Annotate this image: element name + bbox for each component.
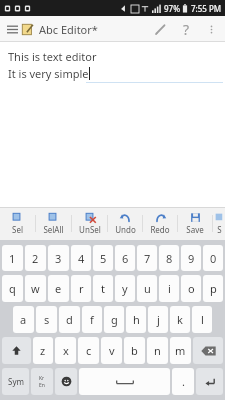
button[interactable]: Undo bbox=[108, 207, 142, 240]
staticText: Sel bbox=[12, 224, 23, 235]
button[interactable]: 2 bbox=[25, 245, 46, 271]
staticText: ? bbox=[183, 20, 190, 39]
staticText: q bbox=[9, 281, 16, 296]
button[interactable]: Menu bbox=[4, 21, 20, 37]
button[interactable]: o bbox=[181, 275, 201, 302]
staticText: 3 bbox=[55, 251, 62, 266]
staticText: It is very simple bbox=[8, 66, 89, 81]
staticText: n bbox=[154, 343, 161, 358]
staticText: p bbox=[210, 281, 217, 296]
staticText: s bbox=[44, 312, 50, 327]
button[interactable]: Backspace bbox=[193, 337, 223, 364]
button[interactable]: p bbox=[203, 275, 223, 302]
button[interactable]: w bbox=[25, 275, 46, 302]
staticText: t bbox=[101, 281, 105, 296]
button[interactable]: 9 bbox=[181, 245, 201, 271]
button[interactable]: Edit bbox=[147, 16, 173, 42]
staticText: 7 bbox=[144, 251, 151, 266]
button[interactable]: n bbox=[147, 337, 168, 364]
staticText: x bbox=[63, 343, 69, 358]
staticText: . bbox=[182, 374, 185, 389]
button[interactable]: s bbox=[36, 306, 57, 333]
staticText: u bbox=[144, 281, 151, 296]
button[interactable]: 7 bbox=[137, 245, 157, 271]
button[interactable]: 0 bbox=[203, 245, 223, 271]
staticText: f bbox=[90, 312, 94, 327]
button[interactable]: d bbox=[59, 306, 80, 333]
button[interactable]: More options bbox=[199, 17, 223, 41]
button[interactable]: m bbox=[170, 337, 191, 364]
button[interactable]: k bbox=[170, 306, 190, 333]
button[interactable]: 4 bbox=[71, 245, 91, 271]
staticText: 6 bbox=[122, 251, 129, 266]
staticText: En bbox=[39, 382, 45, 389]
staticText: 4 bbox=[78, 251, 85, 266]
button[interactable]: Redo bbox=[143, 207, 177, 240]
staticText: 2 bbox=[32, 251, 39, 266]
button[interactable]: Sym bbox=[2, 368, 29, 395]
button[interactable]: . bbox=[172, 368, 194, 395]
staticText: Redo bbox=[150, 224, 170, 235]
button[interactable]: h bbox=[126, 306, 146, 333]
staticText: w bbox=[31, 281, 40, 296]
button[interactable]: y bbox=[115, 275, 135, 302]
button[interactable]: g bbox=[104, 306, 124, 333]
staticText: h bbox=[133, 312, 140, 327]
button[interactable]: e bbox=[48, 275, 69, 302]
staticText: g bbox=[111, 312, 118, 327]
staticText: UnSel bbox=[79, 224, 101, 235]
button[interactable]: c bbox=[78, 337, 99, 364]
staticText: 1 bbox=[9, 251, 16, 266]
button[interactable]: 3 bbox=[48, 245, 69, 271]
staticText: y bbox=[122, 281, 128, 296]
staticText: a bbox=[20, 312, 27, 327]
button[interactable]: Enter bbox=[196, 368, 223, 395]
button[interactable]: t bbox=[93, 275, 113, 302]
staticText: o bbox=[188, 281, 195, 296]
button[interactable]: x bbox=[55, 337, 76, 364]
button[interactable]: Shift bbox=[2, 337, 31, 364]
button[interactable]: Help bbox=[173, 16, 199, 42]
button[interactable]: 8 bbox=[159, 245, 179, 271]
button[interactable]: v bbox=[101, 337, 122, 364]
staticText: m bbox=[175, 343, 186, 358]
staticText: e bbox=[55, 281, 62, 296]
staticText: v bbox=[109, 343, 115, 358]
staticText: Undo bbox=[115, 224, 136, 235]
staticText: c bbox=[86, 343, 92, 358]
button[interactable]: S bbox=[213, 207, 225, 240]
button[interactable]: b bbox=[124, 337, 145, 364]
button[interactable]: 6 bbox=[115, 245, 135, 271]
button[interactable]: Language bbox=[31, 368, 53, 395]
button[interactable]: 1 bbox=[2, 245, 23, 271]
button[interactable]: i bbox=[159, 275, 179, 302]
staticText: SelAll bbox=[43, 224, 64, 235]
staticText: Kr bbox=[39, 375, 45, 382]
staticText: z bbox=[40, 343, 46, 358]
button[interactable]: Sel bbox=[0, 207, 35, 240]
staticText: b bbox=[131, 343, 138, 358]
button[interactable]: SelAll bbox=[36, 207, 71, 240]
button[interactable]: j bbox=[148, 306, 168, 333]
staticText: 0 bbox=[210, 251, 217, 266]
button[interactable]: l bbox=[192, 306, 212, 333]
button[interactable]: This is text editor bbox=[0, 42, 225, 207]
button[interactable]: a bbox=[13, 306, 34, 333]
button[interactable]: Emoji bbox=[55, 368, 77, 395]
staticText: d bbox=[66, 312, 73, 327]
button[interactable]: r bbox=[71, 275, 91, 302]
button[interactable]: Space bbox=[79, 368, 170, 395]
button[interactable]: u bbox=[137, 275, 157, 302]
staticText: 7:55 PM bbox=[191, 3, 222, 14]
button[interactable]: q bbox=[2, 275, 23, 302]
staticText: Save bbox=[186, 224, 204, 235]
staticText: r bbox=[79, 281, 84, 296]
staticText: 97% bbox=[164, 3, 180, 14]
staticText: i bbox=[168, 281, 171, 296]
button[interactable]: 5 bbox=[93, 245, 113, 271]
staticText: 8 bbox=[166, 251, 173, 266]
button[interactable]: f bbox=[82, 306, 102, 333]
button[interactable]: UnSel bbox=[72, 207, 107, 240]
button[interactable]: Save bbox=[178, 207, 212, 240]
button[interactable]: z bbox=[33, 337, 53, 364]
